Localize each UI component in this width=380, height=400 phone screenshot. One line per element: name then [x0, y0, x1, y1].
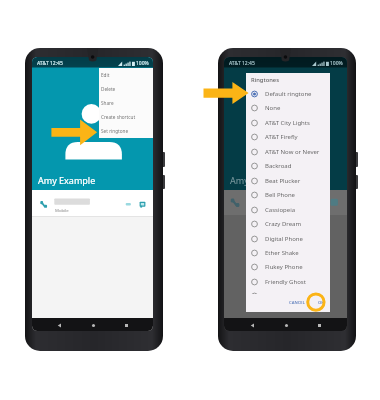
staticText: Bell Phone — [265, 191, 296, 199]
staticText: 100% — [136, 60, 149, 67]
staticText: Default ringtone — [265, 90, 312, 98]
staticText: AT&T 12:45 — [229, 60, 255, 67]
button[interactable]: Recent apps — [120, 319, 132, 331]
staticText: Crazy Dream — [265, 220, 302, 228]
button[interactable]: Home — [87, 319, 99, 331]
button[interactable]: Default ringtone — [246, 87, 330, 101]
button[interactable]: Edit — [99, 68, 153, 82]
button[interactable]: Recent apps — [313, 319, 325, 331]
button[interactable]: Backroad — [246, 159, 330, 173]
staticText: Friendly Ghost — [265, 278, 306, 286]
button[interactable]: Galaxy Bells — [246, 289, 330, 294]
staticText: OK — [318, 300, 324, 306]
staticText: Backroad — [265, 162, 292, 170]
button[interactable]: Mobile — [32, 190, 153, 216]
staticText: Amy Example — [230, 174, 288, 186]
button[interactable]: AT&T Firefly — [246, 130, 330, 144]
button[interactable]: AT&T City Lights — [246, 116, 330, 130]
button[interactable]: Friendly Ghost — [246, 275, 330, 289]
button[interactable]: Cassiopeia — [246, 203, 330, 217]
staticText: CANCEL — [289, 300, 305, 306]
staticText: Edit — [101, 72, 110, 78]
staticText: AT&T Firefly — [265, 133, 298, 141]
button[interactable]: Back — [246, 319, 258, 331]
staticText: Share — [101, 100, 114, 106]
button[interactable]: Flukey Phone — [246, 260, 330, 274]
button[interactable]: AT&T Now or Never — [246, 145, 330, 159]
button[interactable]: Share — [99, 96, 153, 110]
staticText: Digital Phone — [265, 235, 303, 243]
button[interactable]: Home — [280, 319, 292, 331]
button[interactable]: Crazy Dream — [246, 217, 330, 231]
button[interactable]: Ether Shake — [246, 246, 330, 260]
staticText: AT&T 12:45 — [37, 60, 63, 67]
staticText: AT&T City Lights — [265, 119, 310, 127]
staticText: Beat Plucker — [265, 177, 301, 185]
staticText: Mobile — [55, 207, 69, 213]
staticText: Delete — [101, 86, 116, 92]
button[interactable]: Set ringtone — [99, 124, 153, 138]
button[interactable]: Create shortcut — [99, 110, 153, 124]
staticText: Amy Example — [38, 174, 96, 186]
button[interactable]: Bell Phone — [246, 188, 330, 202]
button[interactable]: Digital Phone — [246, 232, 330, 246]
button[interactable]: Delete — [99, 82, 153, 96]
staticText: Ether Shake — [265, 249, 299, 257]
staticText: Cassiopeia — [265, 206, 296, 214]
staticText: 100% — [330, 60, 343, 67]
staticText: Ringtones — [251, 76, 279, 84]
staticText: Set ringtone — [101, 128, 129, 134]
staticText: Flukey Phone — [265, 263, 303, 271]
button[interactable]: Beat Plucker — [246, 174, 330, 188]
staticText: None — [265, 104, 281, 112]
staticText: AT&T Now or Never — [265, 148, 320, 156]
button[interactable]: Back — [53, 319, 65, 331]
button[interactable]: CANCEL — [287, 297, 307, 309]
staticText: Create shortcut — [101, 114, 136, 120]
button[interactable]: OK — [316, 297, 326, 309]
button[interactable]: None — [246, 101, 330, 115]
